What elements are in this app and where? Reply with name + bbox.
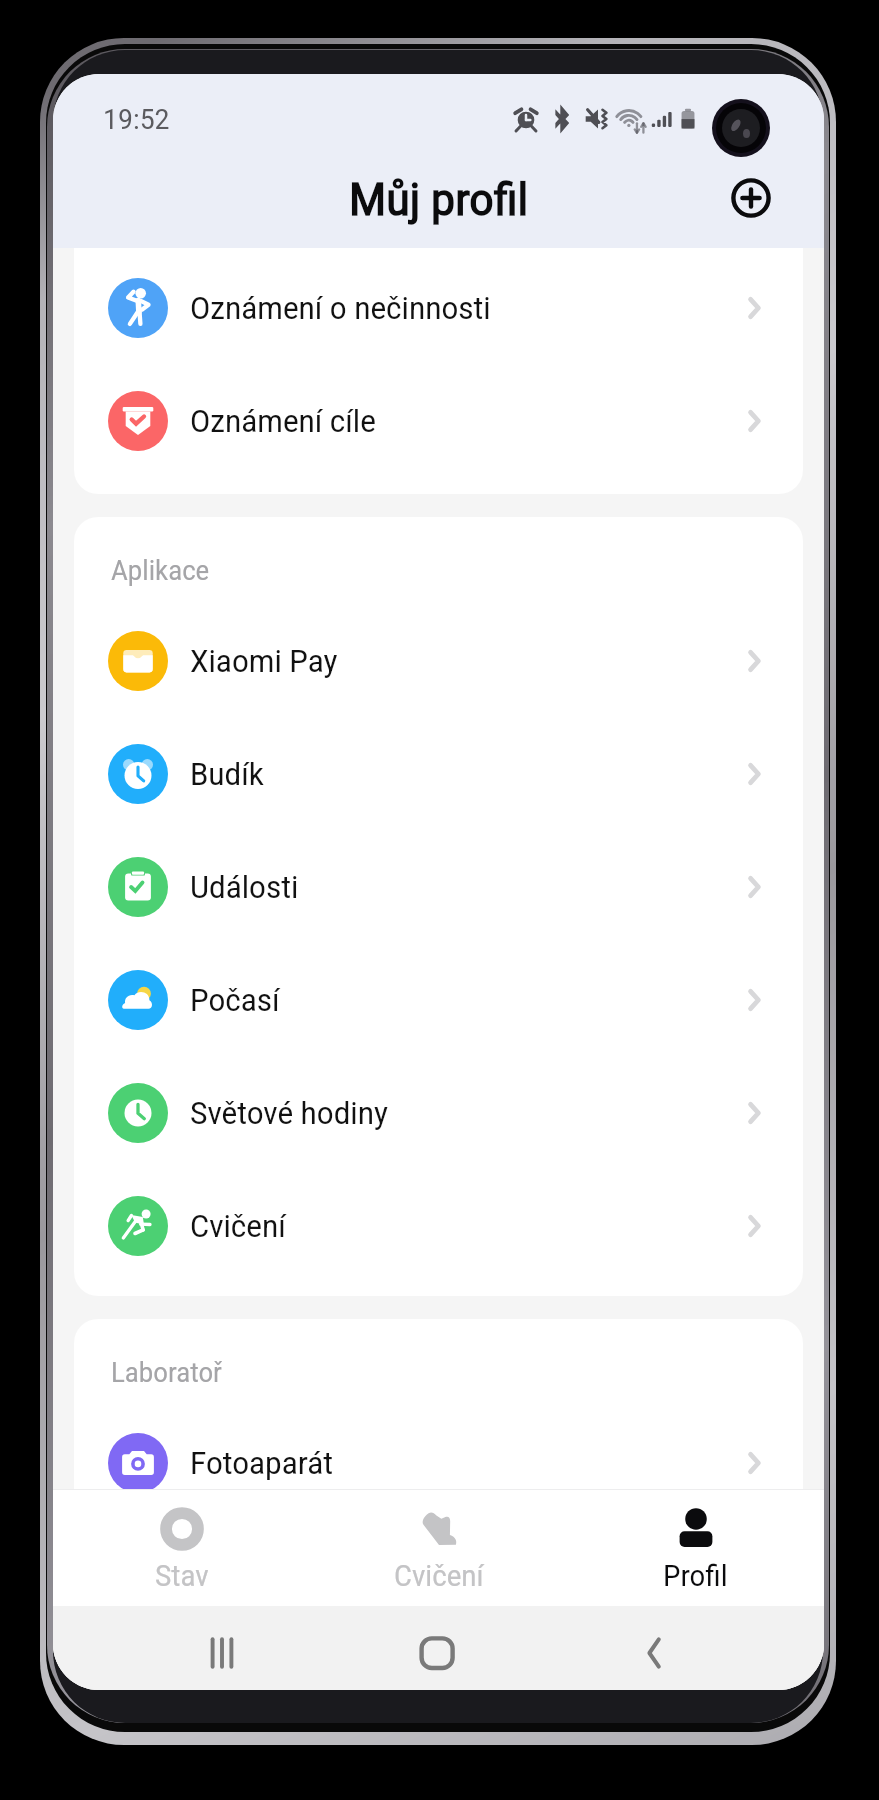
button[interactable]: Oznámení o nečinnosti — [74, 251, 803, 364]
button[interactable]: Budík — [74, 717, 803, 830]
staticText: Cvičení — [394, 1559, 484, 1593]
staticText: Profil — [663, 1559, 728, 1593]
staticText: Cvičení — [190, 1208, 286, 1244]
staticText: Oznámení cíle — [190, 403, 376, 439]
button[interactable]: Světové hodiny — [74, 1056, 803, 1169]
staticText: Fotoaparát — [190, 1445, 333, 1481]
staticText: Můj profil — [349, 173, 529, 226]
staticText: Události — [190, 869, 299, 905]
button[interactable]: Recent apps — [191, 1622, 253, 1684]
staticText: Stav — [155, 1559, 209, 1593]
button[interactable]: Oznámení cíle — [74, 364, 803, 477]
button[interactable]: Počasí — [74, 943, 803, 1056]
button[interactable]: Cvičení — [310, 1490, 567, 1606]
staticText: Počasí — [190, 982, 280, 1018]
button[interactable]: Fotoaparát — [74, 1406, 803, 1519]
button[interactable]: Back — [623, 1622, 685, 1684]
staticText: Oznámení o nečinnosti — [190, 290, 491, 326]
staticText: Aplikace — [111, 555, 210, 587]
button[interactable]: Home — [406, 1622, 468, 1684]
button[interactable]: Xiaomi Pay — [74, 604, 803, 717]
button[interactable]: Profil — [567, 1490, 824, 1606]
button[interactable]: Stav — [53, 1490, 310, 1606]
staticText: Laboratoř — [111, 1357, 222, 1389]
staticText: Xiaomi Pay — [190, 643, 338, 679]
staticText: Světové hodiny — [190, 1095, 388, 1131]
staticText: Budík — [190, 756, 264, 792]
staticText: 19:52 — [103, 103, 170, 136]
button[interactable]: Cvičení — [74, 1169, 803, 1282]
button[interactable]: Události — [74, 830, 803, 943]
button[interactable]: Add — [720, 167, 782, 229]
